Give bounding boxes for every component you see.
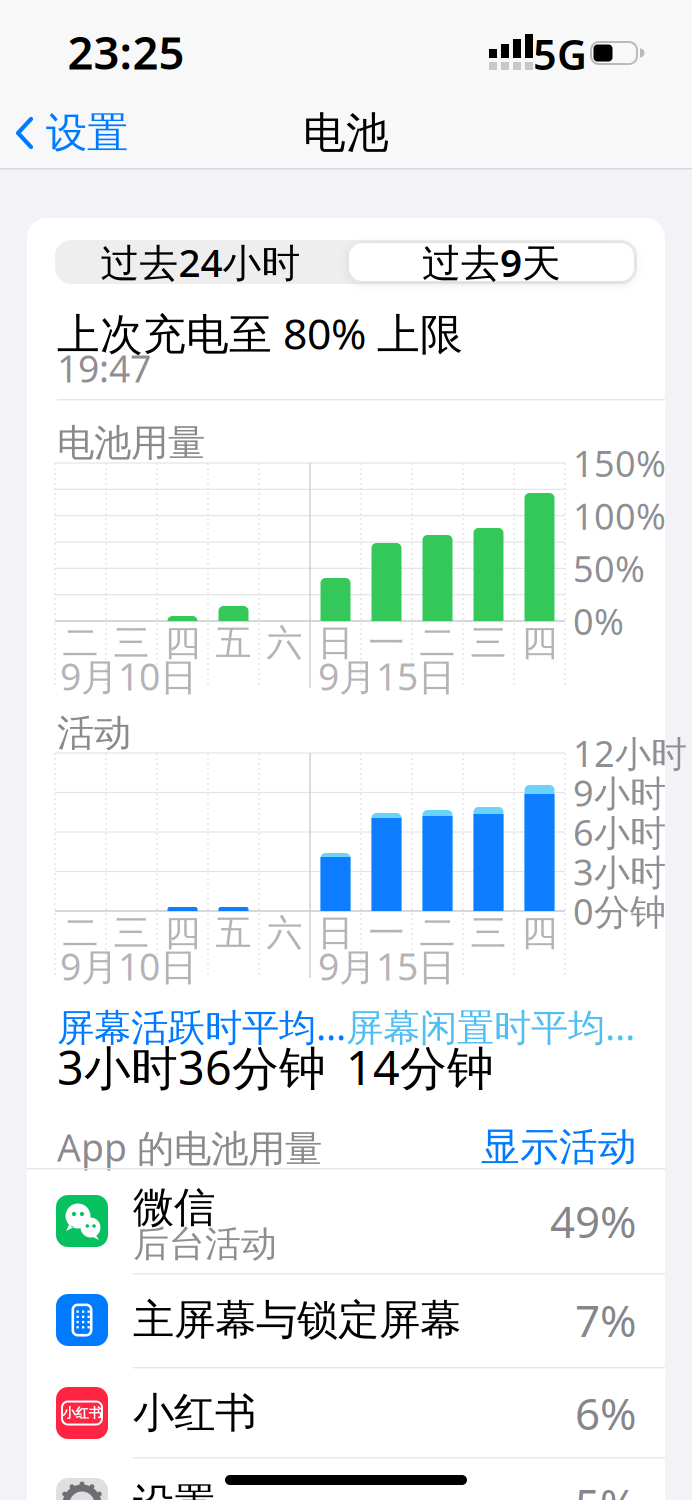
staticText: 二 — [62, 911, 98, 955]
staticText: 三 — [113, 911, 149, 955]
button[interactable] — [27, 1176, 665, 1266]
staticText: 四 — [521, 911, 557, 955]
staticText: 主屏幕与锁定屏幕 — [133, 1295, 461, 1345]
staticText: 3小时36分钟 — [57, 1036, 326, 1098]
staticText: 50% — [573, 544, 645, 592]
staticText: 5% — [575, 1475, 637, 1500]
staticText: 6小时 — [573, 808, 666, 856]
staticText: App 的电池用量 — [57, 1122, 322, 1172]
staticText: 三 — [470, 911, 506, 955]
staticText: 五 — [215, 621, 251, 665]
button[interactable]: 显示活动 — [437, 1127, 637, 1167]
staticText: 5G — [533, 27, 587, 81]
staticText: 六 — [266, 911, 302, 955]
staticText: 150% — [573, 439, 666, 487]
button[interactable] — [27, 1459, 665, 1500]
staticText: 微信 — [133, 1182, 215, 1233]
staticText: 9月10日 — [60, 941, 197, 991]
staticText: 49% — [550, 1192, 637, 1250]
staticText: 四 — [164, 621, 200, 665]
staticText: 活动 — [57, 710, 131, 756]
button[interactable]: 过去9天 — [346, 240, 637, 284]
staticText: 二 — [62, 621, 98, 665]
staticText: 电池 — [303, 107, 389, 159]
staticText: 0% — [573, 597, 624, 645]
staticText: 23:25 — [67, 22, 184, 82]
staticText: 过去9天 — [422, 236, 561, 288]
staticText: 二 — [419, 911, 455, 955]
staticText: 0分钟 — [573, 887, 666, 935]
staticText: 四 — [521, 621, 557, 665]
staticText: 后台活动 — [133, 1222, 277, 1266]
staticText: 7% — [575, 1291, 637, 1349]
staticText: 三 — [470, 621, 506, 665]
staticText: 二 — [419, 621, 455, 665]
staticText: 一 — [368, 911, 404, 955]
staticText: 一 — [368, 621, 404, 665]
button[interactable]: 设置 — [14, 111, 128, 155]
staticText: 电池用量 — [57, 420, 205, 466]
staticText: 设置 — [133, 1479, 215, 1500]
staticText: 显示活动 — [481, 1123, 637, 1171]
staticText: 设置 — [46, 108, 128, 158]
staticText: 14分钟 — [346, 1036, 494, 1098]
staticText: 6% — [575, 1384, 637, 1442]
button[interactable] — [27, 1275, 665, 1365]
button[interactable]: 过去24小时 — [55, 240, 346, 284]
staticText: 四 — [164, 911, 200, 955]
staticText: 日 — [317, 621, 353, 665]
staticText: 12小时 — [573, 729, 687, 777]
staticText: 屏幕活跃时平均用量 — [57, 1001, 367, 1051]
staticText: 9月15日 — [318, 651, 455, 701]
staticText: 小红书 — [62, 1405, 101, 1421]
staticText: 日 — [317, 911, 353, 955]
staticText: 9小时 — [573, 769, 666, 816]
staticText: 三 — [113, 621, 149, 665]
staticText: 19:47 — [57, 343, 151, 393]
staticText: 9月15日 — [318, 941, 455, 991]
staticText: 3小时 — [573, 848, 666, 895]
staticText: 9月10日 — [60, 651, 197, 701]
staticText: 100% — [573, 492, 666, 540]
button[interactable] — [27, 1368, 665, 1458]
staticText: 五 — [215, 911, 251, 955]
staticText: 上次充电至 80% 上限 — [57, 305, 463, 361]
staticText: 小红书 — [133, 1388, 256, 1438]
staticText: 屏幕闲置时平均用量 — [346, 1001, 656, 1051]
staticText: 过去24小时 — [100, 236, 300, 288]
staticText: 六 — [266, 621, 302, 665]
